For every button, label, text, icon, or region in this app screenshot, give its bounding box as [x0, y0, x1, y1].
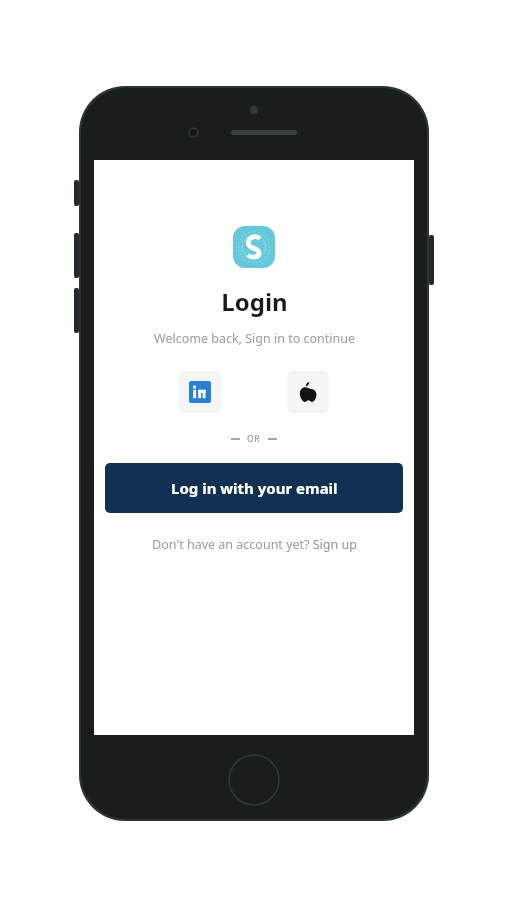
staticText: Log in with your email: [171, 478, 338, 498]
button[interactable]: Log in with your email: [105, 463, 403, 513]
button[interactable]: Don't have an account yet? Sign up: [146, 533, 363, 556]
staticText: Don't have an account yet? Sign up: [152, 536, 357, 553]
button[interactable]: Sign in with LinkedIn: [179, 371, 221, 413]
staticText: Login: [221, 285, 288, 318]
staticText: Welcome back, Sign in to continue: [154, 330, 355, 347]
staticText: OR: [247, 433, 261, 445]
button[interactable]: Sign in with Apple: [287, 371, 329, 413]
